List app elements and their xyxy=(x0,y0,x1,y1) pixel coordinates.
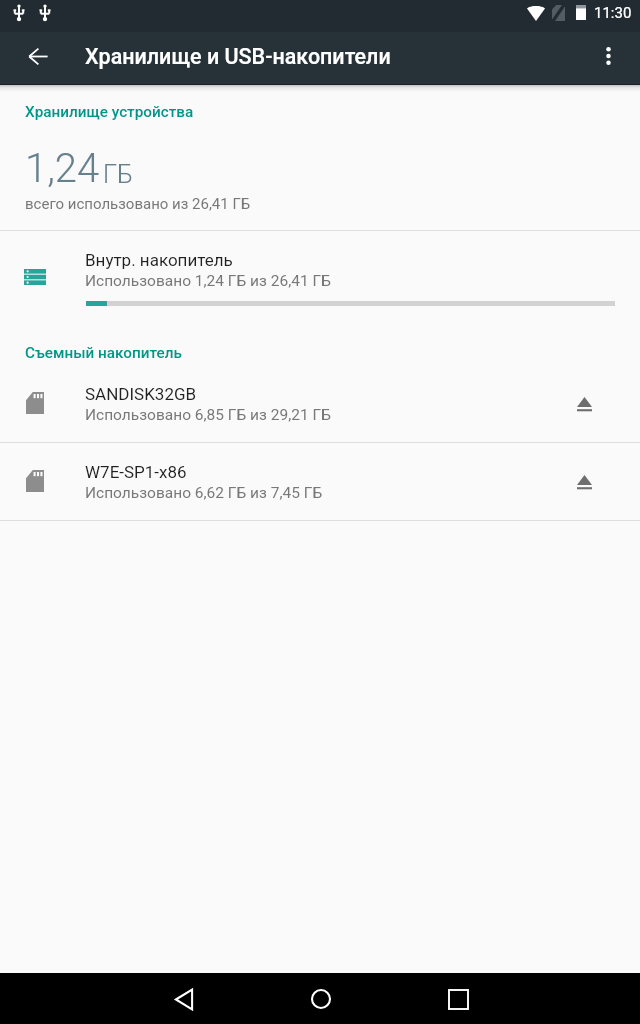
button[interactable]: Eject xyxy=(564,461,604,501)
staticText: Внутр. накопитель xyxy=(85,250,233,270)
button[interactable]: More options xyxy=(588,36,628,76)
staticText: W7E-SP1-x86 xyxy=(85,462,187,482)
button[interactable]: Navigate up xyxy=(18,36,58,76)
button[interactable]: Eject xyxy=(564,383,604,423)
staticText: всего использовано из 26,41 ГБ xyxy=(25,195,251,213)
staticText: Использовано 1,24 ГБ из 26,41 ГБ xyxy=(85,272,331,290)
staticText: Хранилище и USB-накопители xyxy=(85,44,391,69)
button[interactable]: Recent apps xyxy=(418,979,498,1019)
staticText: Использовано 6,85 ГБ из 29,21 ГБ xyxy=(85,406,331,424)
button[interactable]: SANDISK32GB xyxy=(0,364,640,443)
button[interactable]: Back xyxy=(144,979,224,1019)
staticText: Использовано 6,62 ГБ из 7,45 ГБ xyxy=(85,484,323,502)
staticText: 1,24 xyxy=(25,145,100,192)
staticText: ГБ xyxy=(103,159,134,189)
staticText: Хранилище устройства xyxy=(25,103,194,121)
button[interactable]: Внутр. накопитель xyxy=(0,231,640,320)
button[interactable]: Home xyxy=(281,979,361,1019)
button[interactable]: W7E-SP1-x86 xyxy=(0,442,640,521)
staticText: Съемный накопитель xyxy=(25,344,182,362)
staticText: SANDISK32GB xyxy=(85,384,197,404)
staticText: 11:30 xyxy=(594,4,632,22)
